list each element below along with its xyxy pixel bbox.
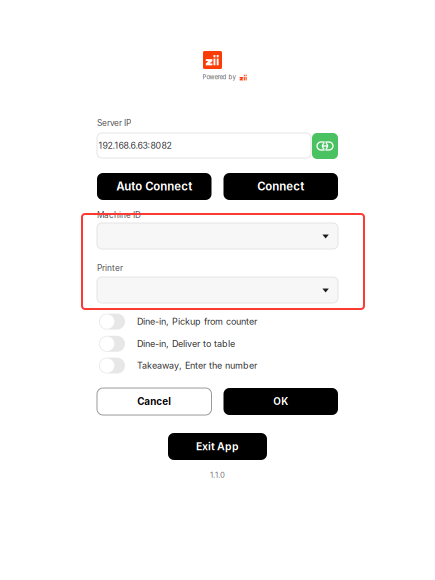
staticText: 1.1.0 — [210, 470, 225, 480]
button[interactable]: Exit App — [168, 433, 267, 460]
staticText: Dine-in, Pickup from counter — [137, 316, 257, 327]
staticText: Takeaway, Enter the number — [137, 360, 257, 371]
button[interactable]: Select — [97, 223, 338, 249]
button[interactable]: Connect — [223, 173, 338, 200]
button[interactable]: Dine-in, Pickup from counter — [99, 314, 340, 330]
staticText: Connect — [257, 180, 304, 193]
staticText: Dine-in, Deliver to table — [137, 338, 235, 349]
staticText: Printer — [97, 263, 123, 273]
staticText: Auto Connect — [116, 180, 192, 193]
staticText: Exit App — [196, 440, 239, 453]
staticText: Server IP — [97, 118, 131, 128]
staticText: OK — [273, 395, 288, 407]
staticText: 192.168.6.63:8082 — [98, 140, 171, 151]
button[interactable]: Dine-in, Deliver to table — [99, 336, 340, 352]
button[interactable]: Takeaway, Enter the number — [99, 358, 340, 374]
button[interactable]: Auto Connect — [97, 173, 211, 200]
staticText: Cancel — [137, 395, 171, 407]
button[interactable]: Cancel — [97, 388, 211, 415]
button[interactable]: Test connection — [312, 133, 338, 159]
staticText: Machine ID — [97, 210, 141, 220]
staticText: Powered by — [202, 73, 235, 81]
button[interactable]: Select — [97, 277, 338, 303]
button[interactable]: OK — [223, 388, 338, 415]
